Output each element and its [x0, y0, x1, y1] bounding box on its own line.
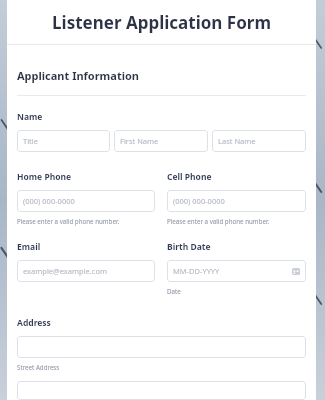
button[interactable]: example@example.com [17, 260, 155, 282]
other: Pick date [292, 267, 300, 275]
staticText: Date [167, 287, 181, 295]
staticText: example@example.com [23, 266, 149, 276]
button[interactable]: MM-DD-YYYY [167, 260, 306, 282]
staticText: (000) 000-0000 [23, 196, 149, 206]
button[interactable] [17, 336, 306, 358]
button[interactable]: Last Name [212, 130, 306, 152]
staticText: Please enter a valid phone number. [17, 217, 120, 225]
staticText: Listener Application Form [52, 11, 271, 34]
staticText: Address [17, 317, 51, 329]
staticText: Please enter a valid phone number. [167, 217, 270, 225]
button[interactable] [17, 381, 306, 400]
staticText: First Name [120, 136, 202, 146]
staticText: MM-DD-YYYY [173, 266, 292, 276]
staticText: Name [17, 111, 43, 123]
button[interactable]: (000) 000-0000 [17, 190, 155, 212]
staticText: Cell Phone [167, 171, 212, 183]
staticText: Last Name [218, 136, 300, 146]
staticText: Applicant Information [17, 68, 140, 83]
staticText: (000) 000-0000 [173, 196, 300, 206]
staticText: Birth Date [167, 241, 211, 253]
button[interactable]: Title [17, 130, 110, 152]
staticText: Title [23, 136, 104, 146]
staticText: Home Phone [17, 171, 72, 183]
button[interactable]: (000) 000-0000 [167, 190, 306, 212]
button[interactable]: First Name [114, 130, 208, 152]
staticText: Email [17, 241, 41, 253]
staticText: Street Address [17, 363, 60, 371]
